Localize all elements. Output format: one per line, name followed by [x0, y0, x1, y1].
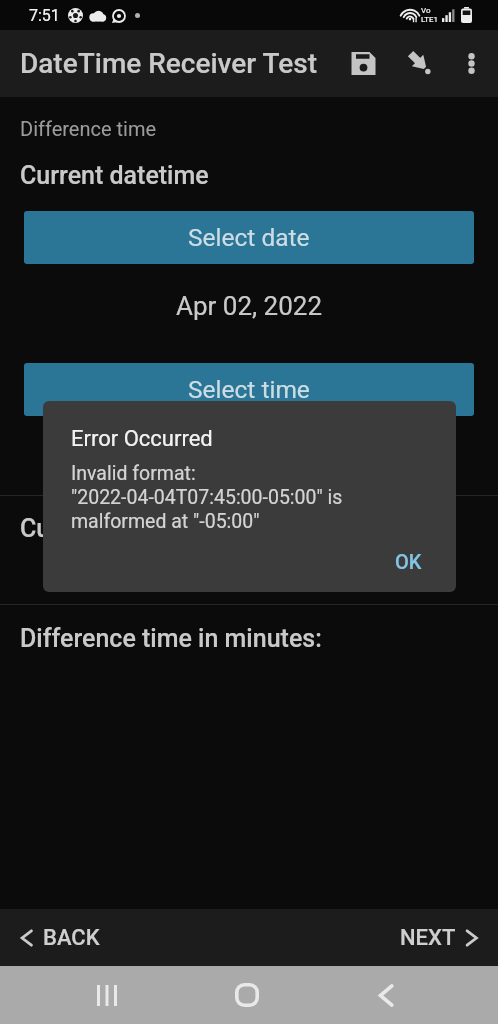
button[interactable]: More options	[448, 39, 496, 87]
button[interactable]: Select time	[24, 363, 474, 416]
staticText: DateTime Receiver Test	[20, 47, 318, 80]
staticText: Difference time	[20, 117, 157, 140]
staticText: LTE1	[421, 15, 439, 24]
staticText: Vo	[421, 6, 431, 15]
staticText: Select date	[188, 223, 310, 252]
staticText: 7:51	[29, 6, 60, 25]
button[interactable]: Receive	[396, 39, 444, 87]
staticText: Apr 02, 2022	[0, 291, 498, 321]
button[interactable]: NEXT	[382, 909, 498, 966]
staticText: Current datetime	[20, 161, 209, 190]
button[interactable]: Select date	[24, 211, 474, 264]
button[interactable]: OK	[381, 540, 436, 583]
button[interactable]: Save	[338, 39, 386, 87]
staticText: NEXT	[400, 925, 456, 951]
staticText: Error Occurred	[71, 426, 213, 452]
button[interactable]: Recent apps	[79, 966, 135, 1024]
button[interactable]: BACK	[0, 909, 118, 966]
staticText: Select time	[188, 375, 310, 404]
staticText: Difference time in minutes:	[20, 624, 322, 653]
staticText: BACK	[43, 925, 100, 951]
button[interactable]: Back	[358, 966, 414, 1024]
button[interactable]: Home	[219, 966, 275, 1024]
staticText: Invalid format: "2022-04-04T07:45:00-05:…	[71, 462, 343, 532]
staticText: OK	[395, 550, 422, 573]
staticText: Current time	[20, 514, 160, 543]
